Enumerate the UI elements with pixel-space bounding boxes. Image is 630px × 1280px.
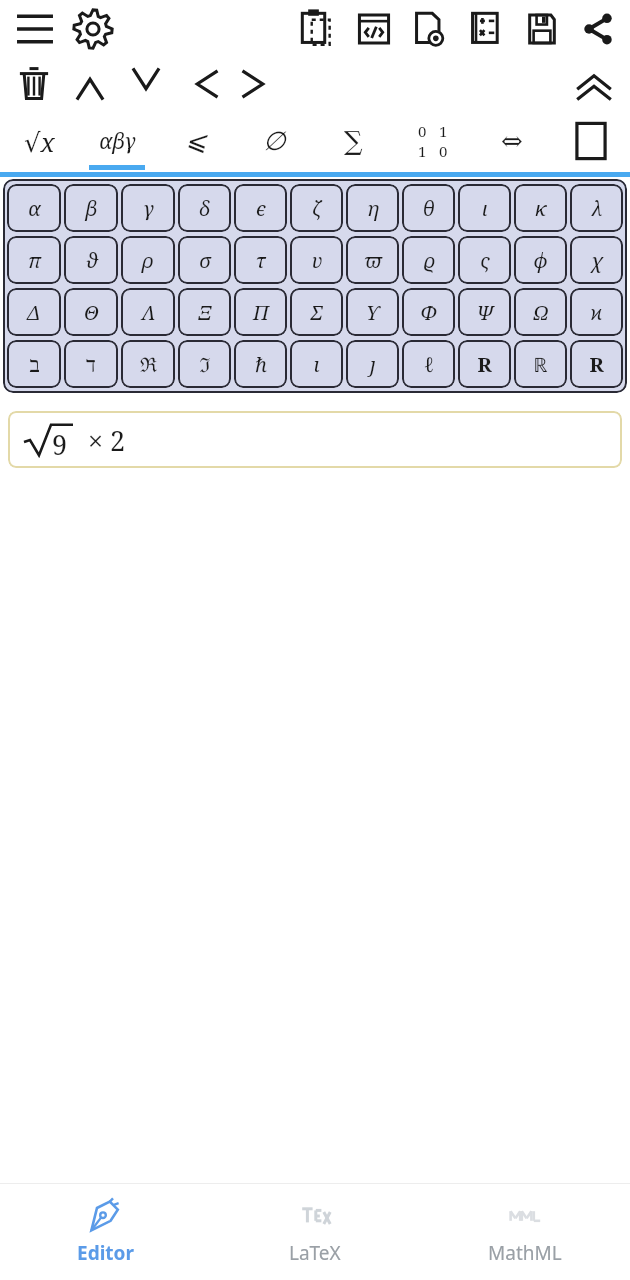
- staticText: ℝ: [533, 351, 548, 378]
- button[interactable]: ρ: [121, 236, 175, 284]
- button[interactable]: Left: [174, 58, 230, 110]
- staticText: ϒ: [366, 299, 379, 326]
- button[interactable]: ζ: [290, 184, 343, 232]
- button[interactable]: Ξ: [178, 288, 231, 336]
- button[interactable]: Editor: [0, 1184, 210, 1280]
- button[interactable]: ȷ: [346, 340, 399, 388]
- button[interactable]: Tab √x: [0, 110, 78, 172]
- button[interactable]: Φ: [402, 288, 455, 336]
- button[interactable]: Tab αβγ: [78, 110, 156, 172]
- button[interactable]: Source code: [346, 1, 402, 57]
- button[interactable]: Menu: [6, 0, 64, 58]
- staticText: ς: [480, 247, 490, 274]
- staticText: ℜ: [140, 351, 157, 378]
- staticText: Θ: [84, 299, 99, 326]
- button[interactable]: Save: [514, 1, 570, 57]
- button[interactable]: κ: [514, 184, 567, 232]
- button[interactable]: Tab matrix: [393, 110, 472, 172]
- button[interactable]: Delete: [6, 58, 62, 110]
- button[interactable]: β: [64, 184, 118, 232]
- button[interactable]: ℑ: [178, 340, 231, 388]
- button[interactable]: Settings: [64, 0, 122, 58]
- button[interactable]: Ω: [514, 288, 567, 336]
- button[interactable]: ϕ: [514, 236, 567, 284]
- button[interactable]: ı: [290, 340, 343, 388]
- button[interactable]: Share: [570, 1, 626, 57]
- button[interactable]: ϱ: [402, 236, 455, 284]
- button[interactable]: Λ: [121, 288, 175, 336]
- staticText: υ: [311, 247, 323, 274]
- button[interactable]: Right: [230, 58, 286, 110]
- staticText: β: [85, 195, 98, 222]
- staticText: θ: [422, 195, 435, 222]
- staticText: Σ: [311, 299, 322, 326]
- button[interactable]: π: [7, 236, 61, 284]
- button[interactable]: 9: [8, 411, 622, 468]
- button[interactable]: Ψ: [458, 288, 511, 336]
- button[interactable]: χ: [570, 236, 623, 284]
- button[interactable]: ℏ: [234, 340, 287, 388]
- button[interactable]: ϵ: [234, 184, 287, 232]
- button[interactable]: ℶ: [7, 340, 61, 388]
- button[interactable]: η: [346, 184, 399, 232]
- staticText: R: [589, 351, 604, 378]
- button[interactable]: ϖ: [346, 236, 399, 284]
- button[interactable]: Π: [234, 288, 287, 336]
- button[interactable]: LaTeX: [210, 1184, 420, 1280]
- button[interactable]: θ: [402, 184, 455, 232]
- staticText: ℑ: [199, 351, 211, 378]
- button[interactable]: ς: [458, 236, 511, 284]
- staticText: ȷ: [370, 351, 376, 378]
- button[interactable]: Tab ∅: [235, 110, 314, 172]
- staticText: 9: [52, 426, 68, 460]
- button[interactable]: Tab ⇔: [472, 110, 551, 172]
- staticText: λ: [591, 195, 603, 222]
- button[interactable]: α: [7, 184, 61, 232]
- staticText: √x: [24, 124, 55, 159]
- staticText: ρ: [142, 247, 154, 274]
- staticText: ι: [482, 195, 488, 222]
- button[interactable]: ι: [458, 184, 511, 232]
- button[interactable]: MathML: [420, 1184, 630, 1280]
- button[interactable]: Up: [62, 58, 118, 110]
- staticText: ℏ: [255, 351, 267, 378]
- button[interactable]: Tab ∑: [314, 110, 393, 172]
- button[interactable]: ϒ: [346, 288, 399, 336]
- staticText: Ψ: [476, 299, 494, 326]
- button[interactable]: Preview: [402, 1, 458, 57]
- staticText: ⩽: [185, 126, 207, 156]
- staticText: ℸ: [86, 351, 96, 378]
- button[interactable]: ℝ: [514, 340, 567, 388]
- staticText: × 2: [88, 422, 126, 459]
- staticText: Δ: [27, 299, 41, 326]
- button[interactable]: ϑ: [64, 236, 118, 284]
- button[interactable]: ℜ: [121, 340, 175, 388]
- button[interactable]: Paste: [290, 1, 346, 57]
- button[interactable]: ℓ: [402, 340, 455, 388]
- button[interactable]: Δ: [7, 288, 61, 336]
- staticText: ∑: [344, 126, 363, 156]
- button[interactable]: τ: [234, 236, 287, 284]
- button[interactable]: Σ: [290, 288, 343, 336]
- button[interactable]: Calculate: [458, 1, 514, 57]
- button[interactable]: δ: [178, 184, 231, 232]
- button[interactable]: Down: [118, 58, 174, 110]
- button[interactable]: ℸ: [64, 340, 118, 388]
- staticText: LaTeX: [289, 1240, 341, 1266]
- button[interactable]: R: [570, 340, 623, 388]
- button[interactable]: υ: [290, 236, 343, 284]
- staticText: ℓ: [424, 351, 434, 378]
- button[interactable]: R: [458, 340, 511, 388]
- button[interactable]: λ: [570, 184, 623, 232]
- button[interactable]: Tab box: [551, 110, 630, 172]
- staticText: ϕ: [534, 247, 548, 274]
- staticText: δ: [199, 195, 210, 222]
- button[interactable]: Collapse: [566, 58, 622, 110]
- button[interactable]: γ: [121, 184, 175, 232]
- button[interactable]: σ: [178, 236, 231, 284]
- button[interactable]: Tab ⩽: [156, 110, 235, 172]
- staticText: MathML: [488, 1240, 562, 1266]
- button[interactable]: ϰ: [570, 288, 623, 336]
- button[interactable]: Θ: [64, 288, 118, 336]
- staticText: 0: [418, 121, 427, 141]
